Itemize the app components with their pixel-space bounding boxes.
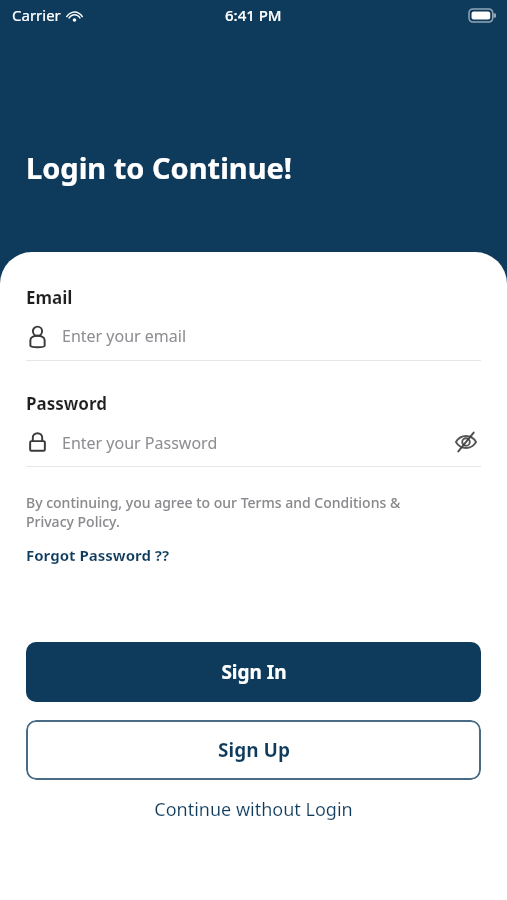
staticText: Continue without Login — [154, 797, 353, 822]
staticText: Enter your Password — [62, 432, 218, 454]
button[interactable]: Enter your email — [26, 321, 481, 361]
button[interactable]: Continue without Login — [26, 794, 481, 824]
staticText: Login to Continue! — [26, 148, 293, 187]
staticText: 6:41 PM — [225, 5, 282, 25]
button[interactable]: Sign In — [26, 642, 481, 702]
staticText: By continuing, you agree to our Terms an… — [26, 493, 441, 531]
staticText: Carrier — [12, 5, 61, 25]
button[interactable]: Sign Up — [26, 720, 481, 780]
staticText: Password — [26, 392, 107, 415]
button[interactable]: Enter your Password — [26, 431, 218, 454]
staticText: Sign Up — [218, 737, 290, 763]
staticText: Email — [26, 286, 73, 309]
button[interactable]: Forgot Password ?? — [26, 545, 170, 565]
button[interactable]: Show password — [451, 427, 481, 457]
staticText: Enter your email — [62, 325, 187, 347]
staticText: Sign In — [221, 659, 287, 685]
